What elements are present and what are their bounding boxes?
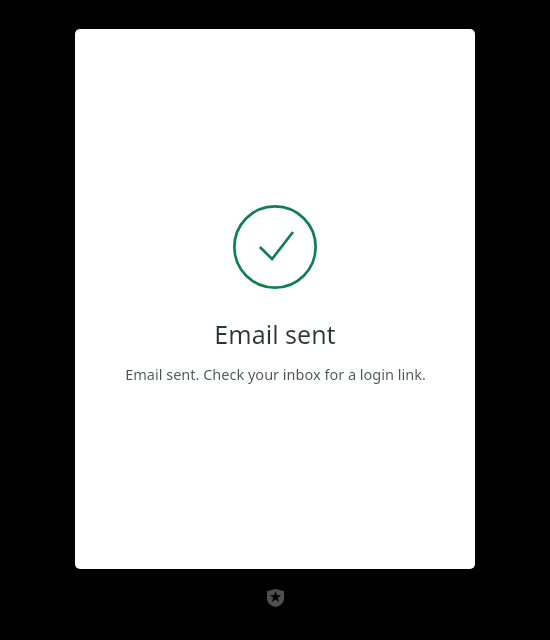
button[interactable]: Auth0: [264, 587, 286, 609]
staticText: Email sent: [214, 317, 336, 351]
staticText: Email sent. Check your inbox for a login…: [125, 364, 426, 384]
other: Success: [233, 205, 317, 289]
